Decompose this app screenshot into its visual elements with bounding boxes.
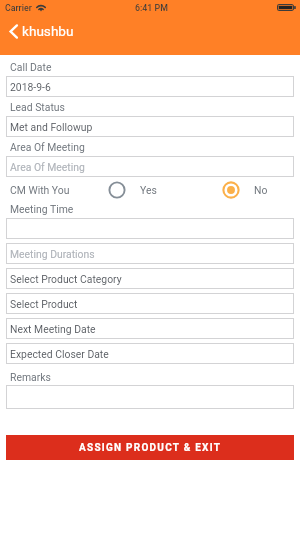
staticText: 6:41 PM <box>135 3 168 13</box>
staticText: ASSIGN PRODUCT & EXIT <box>79 442 222 454</box>
button[interactable]: Meeting Durations <box>6 243 294 264</box>
button[interactable]: Met and Followup <box>6 116 294 137</box>
button[interactable]: Yes <box>108 181 157 199</box>
staticText: Call Date <box>10 61 52 73</box>
staticText: Next Meeting Date <box>10 323 96 335</box>
staticText: Lead Status <box>10 101 65 113</box>
button[interactable] <box>6 385 294 409</box>
staticText: Select Product Category <box>10 273 122 285</box>
staticText: Carrier <box>5 3 32 13</box>
staticText: 2018-9-6 <box>10 81 51 93</box>
staticText: Remarks <box>10 371 51 383</box>
button[interactable]: Area Of Meeting <box>6 156 294 177</box>
button[interactable]: ASSIGN PRODUCT & EXIT <box>6 435 294 460</box>
staticText: Select Product <box>10 298 78 310</box>
button[interactable]: Select Product Category <box>6 268 294 289</box>
staticText: CM With You <box>10 184 70 196</box>
staticText: Yes <box>140 184 157 196</box>
button[interactable]: No <box>222 181 268 199</box>
staticText: khushbu <box>22 23 74 39</box>
button[interactable]: Next Meeting Date <box>6 318 294 339</box>
button[interactable]: 2018-9-6 <box>6 76 294 97</box>
staticText: Meeting Durations <box>10 248 95 260</box>
button[interactable]: Back <box>4 20 79 42</box>
staticText: No <box>254 184 268 196</box>
other: Back <box>9 24 18 39</box>
button[interactable]: Select Product <box>6 293 294 314</box>
staticText: Met and Followup <box>10 121 93 133</box>
staticText: Area Of Meeting <box>10 161 85 173</box>
staticText: Meeting Time <box>10 203 74 215</box>
staticText: Expected Closer Date <box>10 348 109 360</box>
button[interactable]: Expected Closer Date <box>6 343 294 364</box>
button[interactable] <box>6 218 294 239</box>
staticText: Area Of Meeting <box>10 141 85 153</box>
